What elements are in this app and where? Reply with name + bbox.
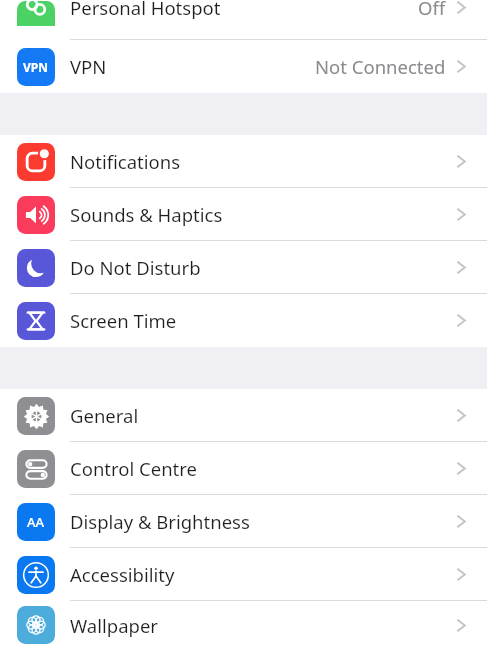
staticText: General	[70, 403, 139, 428]
staticText: Wallpaper	[70, 613, 158, 638]
button[interactable]: Do Not Disturb	[0, 241, 487, 294]
staticText: Off	[418, 0, 446, 20]
staticText: VPN	[70, 54, 107, 79]
staticText: AA	[27, 513, 45, 531]
button[interactable]: Notifications	[0, 135, 487, 188]
staticText: Not Connected	[315, 54, 446, 79]
button[interactable]: Wallpaper	[0, 601, 487, 649]
button[interactable]: Personal Hotspot	[0, 0, 487, 40]
staticText: VPN	[23, 59, 49, 75]
button[interactable]: AA	[0, 495, 487, 548]
staticText: Accessibility	[70, 562, 175, 587]
button[interactable]: Control Centre	[0, 442, 487, 495]
staticText: Do Not Disturb	[70, 255, 201, 280]
button[interactable]: Sounds & Haptics	[0, 188, 487, 241]
button[interactable]: Accessibility	[0, 548, 487, 601]
staticText: Screen Time	[70, 308, 177, 333]
button[interactable]: Screen Time	[0, 294, 487, 347]
staticText: Control Centre	[70, 456, 197, 481]
staticText: Display & Brightness	[70, 509, 250, 534]
button[interactable]: General	[0, 389, 487, 442]
staticText: Sounds & Haptics	[70, 202, 223, 227]
staticText: Notifications	[70, 149, 181, 174]
staticText: Personal Hotspot	[70, 0, 221, 20]
button[interactable]: VPN	[0, 40, 487, 93]
